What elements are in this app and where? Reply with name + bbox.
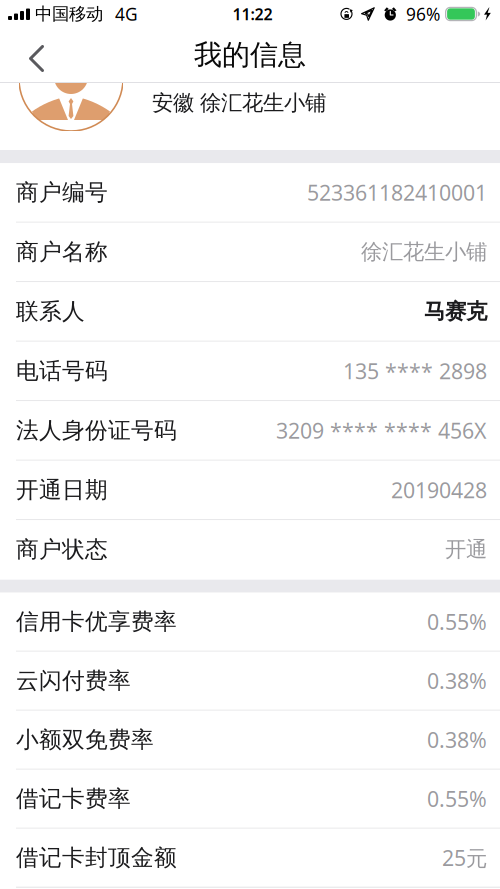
staticText: 25元 — [442, 843, 487, 872]
staticText: 徐汇花生小铺 — [361, 239, 487, 265]
staticText: 法人身份证号码 — [16, 416, 177, 444]
button[interactable]: 电话号码 — [0, 342, 500, 401]
staticText: 开通日期 — [16, 476, 108, 504]
staticText: 3209 **** **** 456X — [276, 416, 487, 445]
staticText: 借记卡封顶金额 — [16, 844, 177, 872]
staticText: 0.55% — [427, 784, 487, 813]
button[interactable]: 商户状态 — [0, 520, 500, 580]
staticText: 电话号码 — [16, 357, 108, 385]
staticText: 商户名称 — [16, 238, 108, 266]
staticText: 4G — [115, 2, 138, 25]
staticText: 马赛克 — [424, 298, 487, 324]
button[interactable]: 商户名称 — [0, 223, 500, 282]
staticText: 20190428 — [391, 476, 487, 504]
staticText: 96% — [406, 2, 440, 25]
staticText: 信用卡优享费率 — [16, 608, 177, 636]
staticText: 0.38% — [427, 725, 487, 754]
button[interactable]: 商户编号 — [0, 163, 500, 223]
button[interactable]: 云闪付费率 — [0, 652, 500, 711]
staticText: 0.55% — [427, 607, 487, 636]
button[interactable]: 法人身份证号码 — [0, 401, 500, 461]
button[interactable]: Back — [0, 28, 59, 82]
staticText: 商户状态 — [16, 535, 108, 563]
staticText: 安徽 徐汇花生小铺 — [152, 90, 326, 116]
button[interactable]: 借记卡费率 — [0, 770, 500, 829]
button[interactable]: 小额双免费率 — [0, 711, 500, 770]
staticText: 云闪付费率 — [16, 667, 131, 695]
staticText: 我的信息 — [194, 38, 306, 72]
staticText: 商户编号 — [16, 178, 108, 206]
button[interactable]: 信用卡优享费率 — [0, 593, 500, 652]
staticText: 借记卡费率 — [16, 785, 131, 813]
staticText: 0.38% — [427, 666, 487, 695]
button[interactable]: 联系人 — [0, 282, 500, 342]
button[interactable]: 借记卡封顶金额 — [0, 829, 500, 888]
staticText: 11:22 — [233, 3, 273, 25]
staticText: 小额双免费率 — [16, 726, 154, 754]
staticText: 135 **** 2898 — [343, 357, 487, 385]
staticText: 联系人 — [16, 297, 85, 325]
staticText: 523361182410001 — [307, 178, 487, 207]
button[interactable]: 开通日期 — [0, 461, 500, 520]
staticText: 开通 — [445, 536, 487, 562]
staticText: 中国移动 — [35, 3, 103, 25]
